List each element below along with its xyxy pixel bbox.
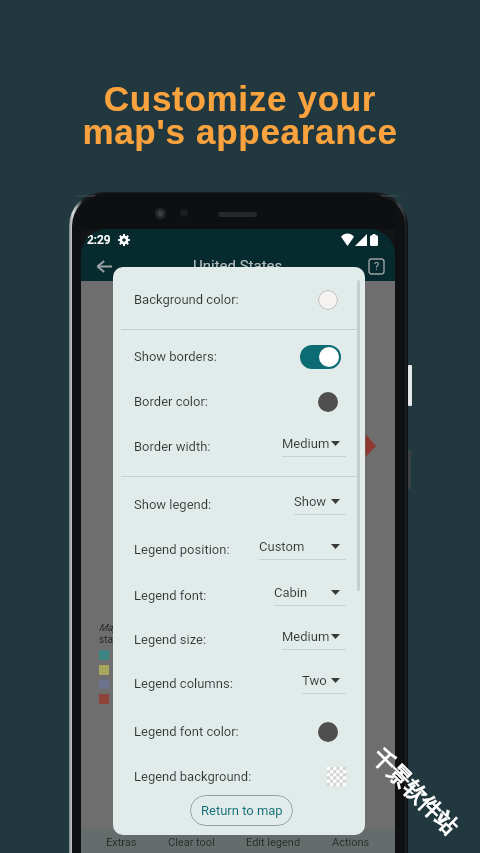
- staticText: Legend position:: [134, 542, 230, 557]
- staticText: Border width:: [134, 439, 211, 454]
- staticText: Medium: [282, 629, 330, 644]
- button[interactable]: Show legend:: [113, 482, 365, 527]
- button[interactable]: Help: [366, 256, 387, 277]
- button[interactable]: Extras: [100, 832, 143, 853]
- staticText: Legend columns:: [134, 676, 233, 691]
- staticText: 2:29: [87, 233, 111, 247]
- button[interactable]: Toggle show borders: [300, 345, 341, 369]
- button[interactable]: Pick colour: [318, 392, 338, 412]
- button[interactable]: Return to map: [190, 795, 293, 826]
- button[interactable]: Back: [92, 254, 116, 278]
- staticText: Legend size:: [134, 632, 207, 647]
- button[interactable]: Pick colour: [318, 722, 338, 742]
- staticText: Clear tool: [168, 836, 215, 849]
- staticText: Background color:: [134, 292, 239, 307]
- button[interactable]: Medium: [282, 629, 346, 650]
- button[interactable]: Border color:: [113, 379, 365, 424]
- button[interactable]: Clear tool: [162, 832, 221, 853]
- staticText: Custom: [259, 539, 305, 554]
- staticText: Actions: [332, 836, 370, 849]
- staticText: Two: [302, 673, 327, 688]
- staticText: states: [99, 634, 127, 646]
- staticText: Medium: [282, 436, 330, 451]
- staticText: 千景软件站: [366, 743, 464, 841]
- staticText: Map of US: [99, 622, 145, 634]
- staticText: Edit legend: [246, 836, 301, 849]
- button[interactable]: Cabin: [274, 585, 346, 606]
- button[interactable]: Background color:: [113, 277, 365, 322]
- button[interactable]: Legend size:: [113, 617, 365, 662]
- button[interactable]: Medium: [282, 436, 346, 457]
- button[interactable]: Two: [302, 673, 346, 694]
- staticText: Legend background:: [134, 769, 252, 784]
- button[interactable]: Pick colour: [318, 290, 338, 310]
- staticText: Legend font color:: [134, 724, 239, 739]
- button[interactable]: Legend font:: [113, 573, 365, 618]
- staticText: Show: [294, 494, 327, 509]
- staticText: ?: [374, 260, 380, 273]
- button[interactable]: Show borders:: [113, 334, 365, 379]
- staticText: Cabin: [274, 585, 308, 600]
- staticText: Customize your map's appearance: [82, 79, 398, 152]
- staticText: Show borders:: [134, 349, 217, 364]
- button[interactable]: Show: [294, 494, 346, 515]
- button[interactable]: Border width:: [113, 424, 365, 469]
- staticText: Legend font:: [134, 588, 207, 603]
- button[interactable]: Legend columns:: [113, 661, 365, 706]
- button[interactable]: Legend position:: [113, 527, 365, 572]
- staticText: United States: [193, 257, 283, 275]
- staticText: Extras: [106, 836, 137, 849]
- button[interactable]: Custom: [259, 539, 346, 560]
- button[interactable]: Edit legend: [240, 832, 307, 853]
- staticText: Show legend:: [134, 497, 212, 512]
- button[interactable]: Legend background:: [113, 754, 365, 799]
- button[interactable]: Legend font color:: [113, 709, 365, 754]
- button[interactable]: Actions: [326, 832, 376, 853]
- staticText: Return to map: [201, 803, 283, 818]
- staticText: Border color:: [134, 394, 209, 409]
